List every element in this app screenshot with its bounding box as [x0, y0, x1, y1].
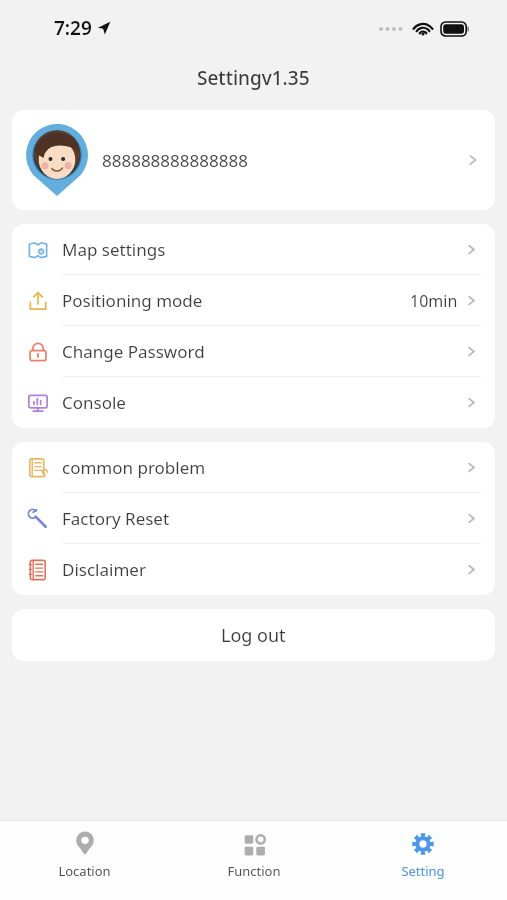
staticText: Location	[58, 862, 111, 880]
other: Function	[241, 831, 267, 857]
staticText: Change Password	[62, 340, 205, 363]
staticText: Settingv1.35	[197, 65, 310, 91]
button[interactable]: Log out	[12, 609, 495, 661]
staticText: 7:29	[54, 15, 92, 41]
staticText: 888888888888888	[102, 149, 248, 172]
button[interactable]: Function	[169, 821, 338, 900]
staticText: Setting	[401, 862, 445, 880]
button[interactable]: Map settings	[12, 224, 495, 275]
staticText: Map settings	[62, 238, 166, 261]
button[interactable]: Location	[0, 821, 169, 900]
staticText: Console	[62, 391, 126, 414]
button[interactable]: Factory Reset	[12, 493, 495, 544]
staticText: Factory Reset	[62, 507, 170, 530]
other: Location	[72, 831, 98, 857]
button[interactable]: Change Password	[12, 326, 495, 377]
other: Setting	[410, 831, 436, 857]
button[interactable]: 888888888888888	[12, 110, 495, 210]
staticText: Disclaimer	[62, 558, 146, 581]
button[interactable]: Console	[12, 377, 495, 428]
button[interactable]: Disclaimer	[12, 544, 495, 595]
staticText: Log out	[221, 623, 286, 648]
staticText: Function	[227, 862, 281, 880]
staticText: 10min	[410, 290, 458, 312]
staticText: Positioning mode	[62, 289, 203, 312]
button[interactable]: common problem	[12, 442, 495, 493]
staticText: common problem	[62, 456, 206, 479]
button[interactable]: Positioning mode	[12, 275, 495, 326]
button[interactable]: Setting	[338, 821, 507, 900]
